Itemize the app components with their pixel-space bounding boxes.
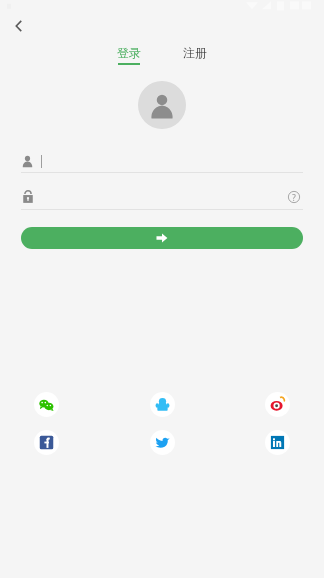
staticText: 注册 bbox=[183, 45, 207, 60]
button[interactable]: 登录 bbox=[107, 43, 151, 67]
button[interactable]: WeChat login bbox=[34, 392, 59, 417]
staticText: 登录 bbox=[117, 45, 141, 60]
button[interactable]: Weibo login bbox=[265, 392, 290, 417]
button[interactable]: Avatar bbox=[138, 81, 186, 129]
button[interactable]: Twitter login bbox=[150, 430, 175, 455]
button[interactable]: Facebook login bbox=[34, 430, 59, 455]
staticText: ? bbox=[292, 192, 296, 203]
button[interactable]: 注册 bbox=[173, 43, 217, 67]
button[interactable]: Login bbox=[21, 227, 303, 249]
button[interactable]: Forgot password help bbox=[21, 185, 303, 209]
button[interactable] bbox=[21, 150, 303, 172]
button[interactable]: LinkedIn login bbox=[265, 430, 290, 455]
button[interactable]: Back bbox=[6, 13, 32, 39]
button[interactable]: Forgot password help bbox=[285, 188, 303, 206]
button[interactable]: QQ login bbox=[150, 392, 175, 417]
